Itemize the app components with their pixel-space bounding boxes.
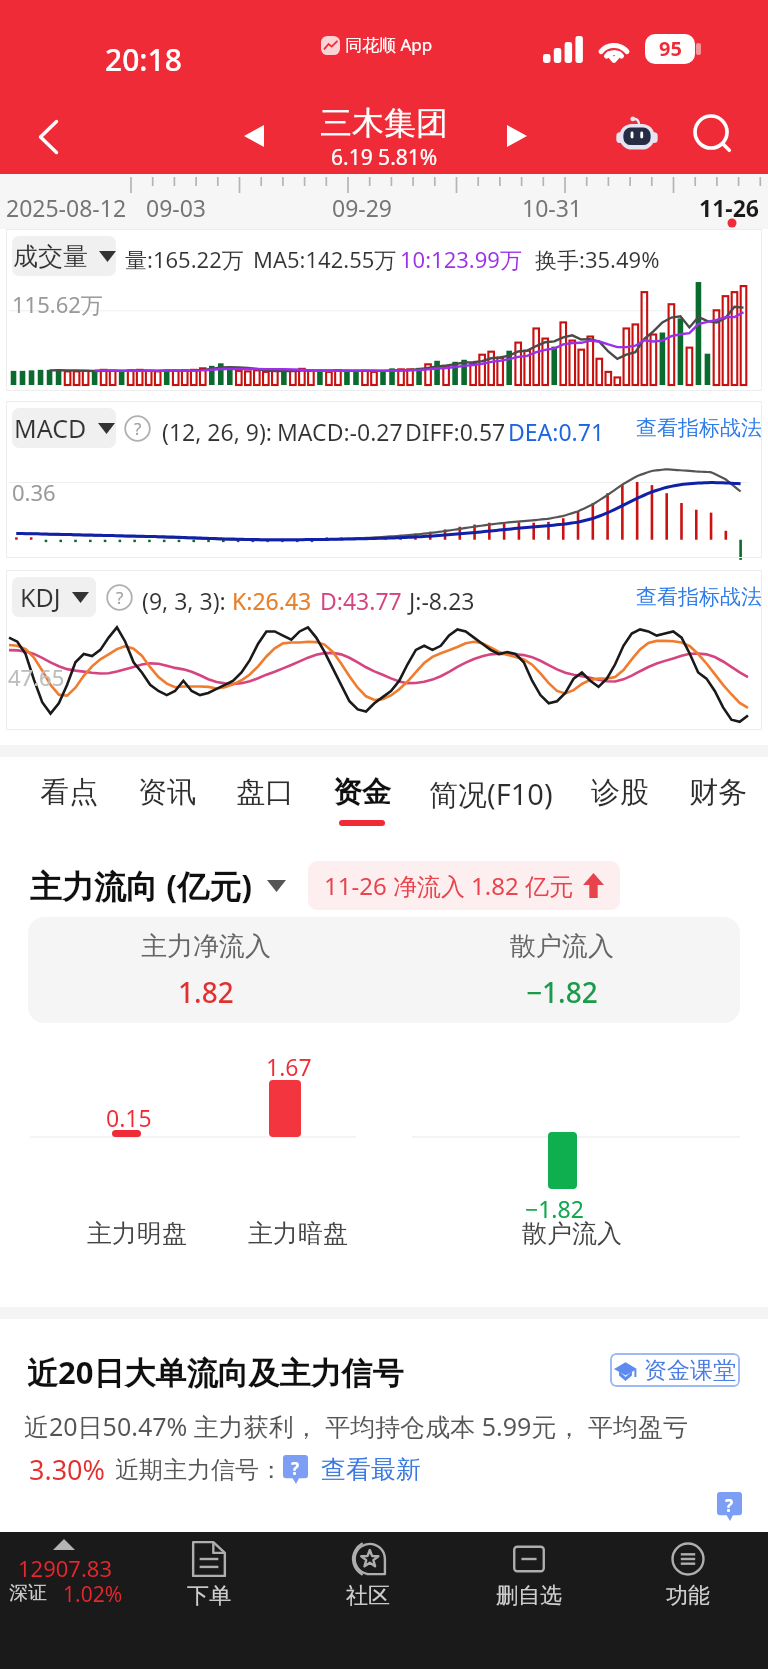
staticText: 09-29 — [332, 192, 393, 223]
staticText: 95 — [659, 35, 682, 62]
staticText: 6.19 5.81% — [331, 143, 438, 172]
button[interactable]: Help — [283, 1455, 308, 1484]
staticText: 近20日大单流向及主力信号 — [27, 1351, 404, 1393]
staticText: ? — [291, 1457, 300, 1480]
staticText: 115.62万 — [12, 289, 103, 319]
button[interactable]: Search — [675, 95, 753, 174]
staticText: 换手:35.49% — [535, 244, 660, 274]
staticText: 简况(F10) — [429, 774, 553, 814]
staticText: 主力流向 (亿元) — [30, 864, 253, 908]
staticText: (9, 3, 3): — [142, 585, 226, 616]
staticText: 资金 — [333, 774, 391, 811]
staticText: 10:123.99万 — [400, 244, 522, 274]
staticText: 诊股 — [591, 774, 649, 811]
staticText: 1.67 — [266, 1051, 312, 1082]
staticText: 三木集团 — [320, 103, 448, 143]
staticText: 看点 — [40, 774, 98, 811]
button[interactable]: 成交量 — [12, 236, 116, 276]
button[interactable]: KDJ — [12, 577, 96, 617]
staticText: −1.82 — [526, 973, 598, 1011]
staticText: MACD:-0.27 — [277, 416, 403, 447]
button[interactable]: Next stock — [472, 95, 562, 174]
staticText: 10-31 — [522, 192, 583, 223]
staticText: 20:18 — [105, 39, 182, 80]
staticText: 查看最新 — [321, 1454, 421, 1485]
staticText: 0.36 — [12, 477, 56, 507]
button[interactable]: 资金课堂 — [610, 1353, 740, 1387]
staticText: 11-26 净流入 1.82 亿元 — [324, 869, 573, 902]
button[interactable]: 删自选 — [469, 1532, 589, 1622]
staticText: 1.02% — [63, 1580, 123, 1609]
staticText: DEA:0.71 — [508, 416, 605, 447]
staticText: 盘口 — [236, 774, 294, 811]
staticText: 删自选 — [496, 1582, 562, 1610]
button[interactable]: 看点 — [29, 757, 109, 837]
button[interactable]: Previous stock — [209, 95, 299, 174]
staticText: 财务 — [689, 774, 747, 811]
staticText: 散户流入 — [522, 1218, 622, 1249]
staticText: 查看指标战法 — [636, 584, 762, 610]
button[interactable]: 社区 — [308, 1532, 428, 1622]
button[interactable]: 资金 — [322, 757, 402, 837]
staticText: K:26.43 — [232, 585, 312, 616]
staticText: MACD — [14, 411, 87, 445]
button[interactable]: 11-26 净流入 1.82 亿元 — [308, 861, 620, 910]
button[interactable]: MACD — [12, 408, 116, 448]
staticText: 3.30% — [29, 1451, 106, 1488]
button[interactable]: Info — [124, 415, 151, 442]
staticText: 12907.83 — [18, 1553, 112, 1583]
button[interactable]: 财务 — [678, 757, 758, 837]
button[interactable]: 诊股 — [580, 757, 660, 837]
button[interactable]: Help — [717, 1492, 742, 1521]
staticText: 量:165.22万 — [125, 244, 244, 274]
button[interactable]: 查看指标战法 — [636, 584, 762, 610]
staticText: D:43.77 — [320, 585, 402, 616]
button[interactable]: 盘口 — [225, 757, 305, 837]
staticText: 查看指标战法 — [636, 415, 762, 441]
staticText: 功能 — [666, 1582, 710, 1610]
button[interactable]: AI assistant — [595, 95, 679, 174]
button[interactable]: 下单 — [149, 1532, 269, 1622]
button[interactable]: Back — [4, 95, 92, 174]
staticText: 主力净流入 — [141, 930, 271, 963]
staticText: 1.82 — [178, 973, 234, 1011]
staticText: MA5:142.55万 — [253, 244, 397, 274]
staticText: −1.82 — [525, 1193, 584, 1224]
button[interactable]: 12907.83 — [0, 1532, 150, 1612]
staticText: 11-26 — [699, 192, 759, 223]
staticText: 主力暗盘 — [248, 1218, 348, 1249]
staticText: 社区 — [346, 1582, 390, 1610]
staticText: 2025-08-12 — [6, 192, 127, 223]
button[interactable]: 三木集团 — [320, 103, 448, 172]
staticText: ? — [134, 417, 142, 440]
staticText: 09-03 — [146, 192, 207, 223]
staticText: 成交量 — [13, 241, 88, 272]
button[interactable]: 功能 — [628, 1532, 748, 1622]
staticText: 主力明盘 — [87, 1218, 187, 1249]
staticText: KDJ — [20, 580, 61, 614]
button[interactable]: 查看指标战法 — [636, 415, 762, 441]
staticText: DIFF:0.57 — [405, 416, 506, 447]
staticText: 资金课堂 — [644, 1356, 736, 1385]
button[interactable]: 查看最新 — [321, 1454, 421, 1485]
staticText: 下单 — [187, 1582, 231, 1610]
button[interactable]: Info — [106, 584, 133, 611]
staticText: 近期主力信号： — [115, 1455, 283, 1485]
staticText: 资讯 — [138, 774, 196, 811]
staticText: 0.15 — [106, 1102, 152, 1133]
staticText: J:-8.23 — [409, 585, 475, 616]
button[interactable]: 资讯 — [127, 757, 207, 837]
staticText: 同花顺 App — [345, 33, 433, 56]
staticText: 47.65 — [8, 662, 65, 692]
staticText: 深证 — [9, 1581, 47, 1605]
staticText: ? — [116, 586, 124, 609]
staticText: 散户流入 — [510, 930, 614, 963]
button[interactable]: 简况(F10) — [416, 757, 566, 837]
staticText: 近20日50.47% 主力获利， 平均持仓成本 5.99元， 平均盈亏 — [24, 1409, 688, 1443]
staticText: ? — [725, 1494, 734, 1517]
staticText: (12, 26, 9): — [162, 416, 273, 447]
